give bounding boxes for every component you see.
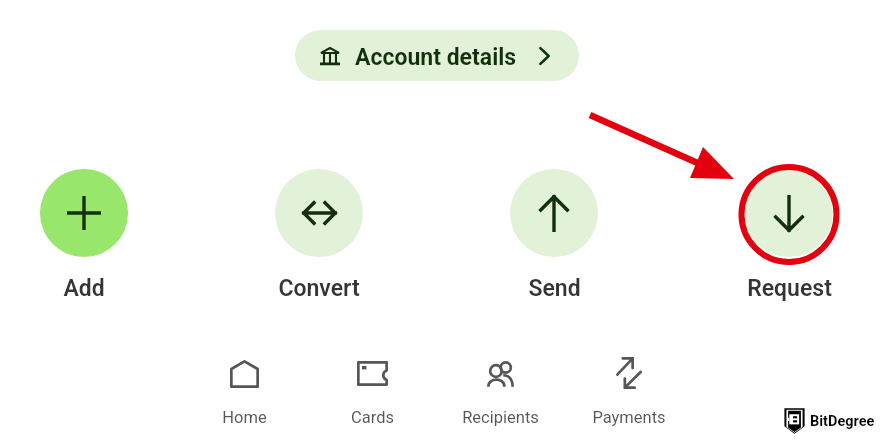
- button[interactable]: Home: [184, 360, 304, 427]
- staticText: Request: [747, 275, 832, 302]
- button[interactable]: Request: [727, 169, 851, 302]
- button[interactable]: Send: [492, 169, 616, 302]
- button[interactable]: Add: [22, 169, 146, 302]
- staticText: Payments: [592, 408, 666, 427]
- staticText: Recipients: [462, 408, 539, 427]
- button[interactable]: Cards: [312, 361, 432, 427]
- button[interactable]: Recipients: [440, 359, 560, 427]
- staticText: Cards: [351, 408, 394, 427]
- staticText: Account details: [355, 44, 517, 71]
- button[interactable]: Account details: [295, 30, 579, 81]
- button[interactable]: Payments: [569, 357, 689, 427]
- staticText: Convert: [278, 275, 360, 302]
- staticText: Add: [63, 275, 105, 302]
- staticText: Send: [528, 275, 581, 302]
- staticText: BitDegree: [810, 413, 875, 430]
- staticText: Home: [222, 408, 267, 427]
- button[interactable]: Convert: [257, 169, 381, 302]
